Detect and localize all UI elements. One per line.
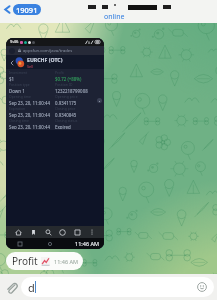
staticText: Sep 23, 20, 11:00:44 <box>9 124 50 129</box>
button[interactable]: More options <box>88 228 96 236</box>
staticText: Profit <box>12 254 38 268</box>
staticText: Closing time <box>9 118 29 123</box>
staticText: 9:46 <box>10 39 19 45</box>
staticText: Down 1 <box>9 88 25 94</box>
staticText: Sep 23, 20, 11:00:44 <box>9 100 50 106</box>
staticText: Sell <box>27 64 34 69</box>
button[interactable]: Help <box>96 97 102 103</box>
staticText: Expired <box>55 124 71 129</box>
staticText: Position type <box>9 82 30 87</box>
staticText: Profit <box>55 70 64 75</box>
staticText: 11:46 AM <box>75 240 99 247</box>
staticText: Closing status <box>55 118 78 123</box>
staticText: Expiration <box>9 106 26 111</box>
staticText: online <box>104 12 125 22</box>
button[interactable]: Downloads <box>58 228 67 237</box>
button[interactable]: Tabs <box>73 228 82 237</box>
button[interactable]: 19091 <box>13 4 41 15</box>
staticText: d <box>28 280 35 295</box>
staticText: 1232218799008 <box>55 88 88 94</box>
button[interactable]: Home <box>14 228 23 237</box>
button[interactable]: Search <box>44 228 53 237</box>
button[interactable]: Back <box>1 3 13 15</box>
staticText: $0.72 (+88%) <box>55 76 82 82</box>
button[interactable]: Bookmarks <box>29 228 38 237</box>
staticText: $1 <box>9 76 15 82</box>
staticText: appsfun.com/java/trades <box>23 48 73 54</box>
button[interactable]: Attach <box>2 278 21 297</box>
staticText: EURCHF (OTC) <box>27 56 63 63</box>
button[interactable]: Profit <box>6 252 83 270</box>
staticText: Investment <box>9 70 28 75</box>
button[interactable]: Emoji <box>196 281 208 293</box>
staticText: Opening price <box>55 94 78 99</box>
staticText: 0.9341175 <box>55 100 77 106</box>
staticText: Opening time <box>9 94 31 99</box>
staticText: Sep 23, 20, 11:00:44 <box>9 112 50 118</box>
staticText: 11:46 AM <box>54 258 78 265</box>
staticText: Closing price <box>55 106 76 111</box>
staticText: Position ID <box>55 82 73 87</box>
staticText: 0.9340845 <box>55 112 77 118</box>
button[interactable]: 9:46 <box>6 38 104 249</box>
button[interactable]: Back <box>8 59 15 66</box>
staticText: 19091 <box>16 5 38 15</box>
button[interactable]: d <box>21 277 214 297</box>
